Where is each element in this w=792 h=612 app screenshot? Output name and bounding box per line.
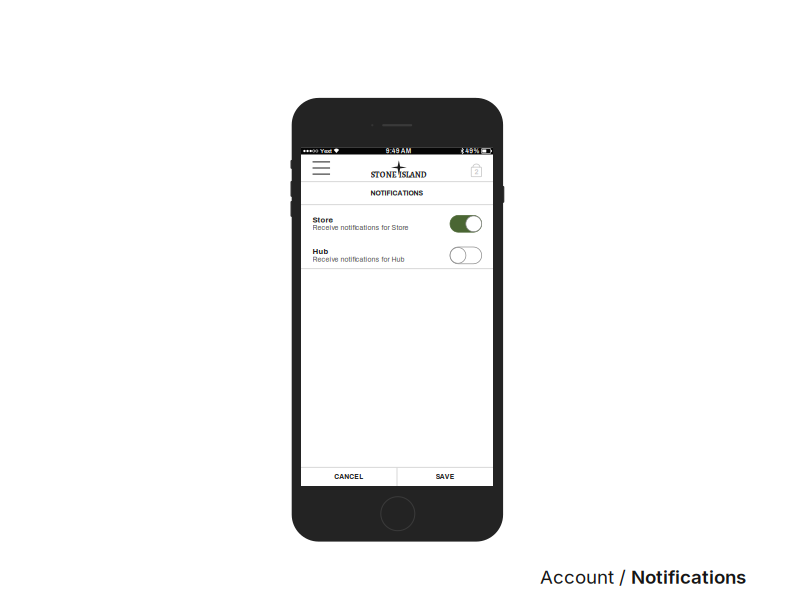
staticText: C A N C E L bbox=[334, 473, 363, 480]
staticText: Receive notifications for Hub bbox=[312, 256, 404, 263]
button[interactable]: Hub bbox=[301, 237, 493, 268]
button[interactable]: Menu bbox=[309, 155, 333, 181]
staticText: S A V E bbox=[436, 473, 455, 480]
staticText: Hub bbox=[312, 247, 328, 256]
staticText: Yext bbox=[318, 148, 332, 154]
staticText: Account / bbox=[540, 566, 631, 588]
button[interactable]: Store bbox=[301, 205, 493, 237]
staticText: N O T I F I C A T I O N S bbox=[370, 189, 423, 197]
staticText: 49% bbox=[464, 147, 479, 154]
staticText: 9:49 AM bbox=[386, 147, 412, 154]
staticText: Notifications bbox=[631, 566, 746, 588]
staticText: Store bbox=[312, 216, 332, 224]
staticText: 2 bbox=[474, 168, 478, 176]
staticText: Receive notifications for Store bbox=[312, 224, 408, 231]
button[interactable]: C A N C E L bbox=[301, 468, 397, 486]
staticText: STONE ISLAND bbox=[371, 169, 427, 180]
button[interactable]: Shopping bag, 2 items bbox=[464, 155, 488, 181]
button[interactable]: S A V E bbox=[397, 468, 493, 486]
